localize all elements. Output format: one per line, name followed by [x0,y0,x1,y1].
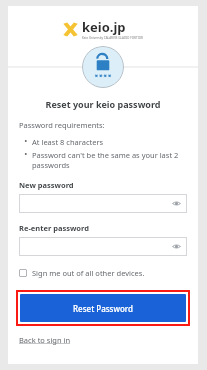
staticText: Back to sign in [19,335,71,345]
staticText: At least 8 characters [32,137,104,147]
staticText: Password requirements: [19,120,105,130]
staticText: Keio University CALARVIS GLADIO FORTIOR [82,36,143,40]
staticText: Reset Password [73,303,134,314]
staticText: Password can't be the same as your last … [32,150,187,170]
staticText: keio.jp [82,18,126,36]
button[interactable]: Reset Password [20,294,186,322]
button[interactable]: Back to sign in [19,335,71,345]
button[interactable]: Show password [19,194,187,213]
button[interactable]: Sign me out of all other devices. [19,268,187,278]
button[interactable]: Show password [19,237,187,256]
staticText: Sign me out of all other devices. [32,268,145,278]
button[interactable]: Show password [172,199,181,208]
staticText: Re-enter password [19,223,89,233]
staticText: Reset your keio password [19,98,187,110]
button[interactable]: Show password [172,242,181,251]
staticText: New password [19,180,74,190]
